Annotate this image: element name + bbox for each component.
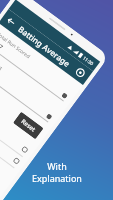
button[interactable]: Settings (74, 66, 87, 79)
button[interactable]: Reset (13, 112, 44, 139)
button[interactable]: Clear (46, 113, 53, 120)
staticText: 11:30 (82, 55, 95, 67)
staticText: With (47, 160, 67, 172)
button[interactable]: Back (5, 15, 17, 28)
button[interactable]: Clear (61, 92, 68, 99)
staticText: Times Out (0, 52, 4, 73)
button[interactable]: Strike Rate (0, 102, 22, 168)
staticText: 247 (0, 38, 5, 53)
staticText: Reset (19, 117, 37, 133)
staticText: Batting Average (16, 23, 73, 69)
staticText: Explanation (32, 172, 82, 184)
staticText: Total Run Scored (0, 31, 32, 60)
button[interactable]: Batting Average (0, 91, 31, 157)
